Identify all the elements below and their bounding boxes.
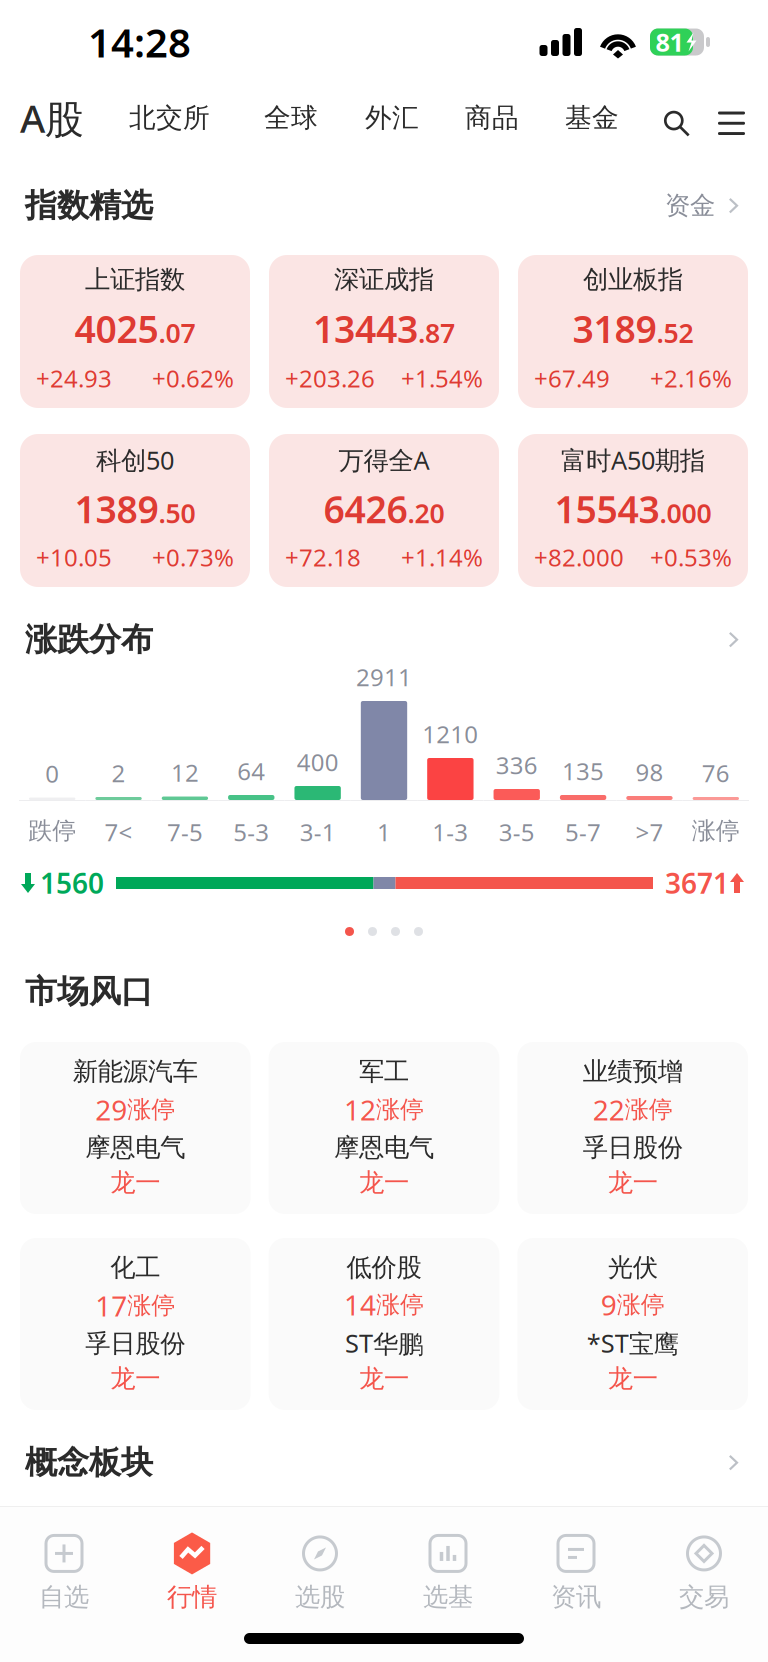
staticText: 选基 — [423, 1581, 473, 1612]
staticText: 资讯 — [551, 1581, 601, 1612]
staticText: 涨停 — [376, 1095, 424, 1124]
staticText: 涨停 — [625, 1095, 673, 1124]
staticText: 98 — [635, 756, 663, 788]
button[interactable]: 创业板指 — [518, 255, 748, 408]
button[interactable]: 全球 — [264, 101, 318, 134]
staticText: 龙一 — [359, 1363, 409, 1394]
staticText: +67.49 — [534, 362, 610, 394]
button[interactable]: 资金 — [665, 190, 743, 221]
staticText: 17 — [95, 1287, 127, 1324]
staticText: +1.14% — [401, 541, 483, 573]
staticText: 全球 — [264, 101, 318, 134]
staticText: 13443 — [313, 304, 418, 353]
staticText: >7 — [635, 816, 663, 848]
button[interactable]: 商品 — [465, 101, 519, 134]
button[interactable]: 自选 — [0, 1532, 128, 1612]
staticText: 涨停 — [376, 1290, 424, 1319]
button[interactable]: 选股 — [256, 1532, 384, 1612]
staticText: 涨停 — [127, 1291, 175, 1320]
staticText: 7-5 — [167, 816, 203, 848]
button[interactable]: 更多 — [723, 1453, 743, 1473]
button[interactable]: 低价股 — [269, 1238, 499, 1410]
staticText: A股 — [20, 92, 84, 143]
staticText: 龙一 — [608, 1167, 658, 1198]
button[interactable]: 新能源汽车 — [20, 1042, 251, 1214]
button[interactable]: 行情 — [128, 1532, 256, 1612]
staticText: 135 — [562, 755, 604, 787]
staticText: 涨停 — [127, 1095, 175, 1124]
staticText: 资金 — [665, 190, 715, 221]
staticText: 涨停 — [692, 816, 740, 845]
staticText: 3189 — [572, 304, 656, 353]
staticText: 12 — [344, 1091, 376, 1128]
staticText: 孚日股份 — [583, 1132, 683, 1163]
button[interactable]: 业绩预增 — [517, 1042, 748, 1214]
staticText: 1-3 — [432, 816, 468, 848]
staticText: +203.26 — [285, 362, 375, 394]
button[interactable]: 上证指数 — [20, 255, 250, 408]
staticText: +72.18 — [285, 541, 361, 573]
staticText: 龙一 — [110, 1363, 160, 1394]
staticText: 摩恩电气 — [85, 1132, 185, 1163]
staticText: 概念板块 — [25, 1443, 153, 1482]
staticText: .000 — [659, 495, 711, 531]
staticText: 摩恩电气 — [334, 1132, 434, 1163]
staticText: 14:28 — [88, 15, 191, 68]
staticText: 上证指数 — [85, 264, 185, 295]
staticText: 9 — [601, 1286, 617, 1323]
staticText: 1389 — [74, 484, 158, 534]
staticText: 5-3 — [233, 816, 269, 848]
staticText: 北交所 — [129, 101, 210, 134]
button[interactable]: 北交所 — [129, 101, 210, 134]
staticText: +0.62% — [152, 362, 234, 394]
staticText: 2 — [111, 757, 125, 789]
staticText: 涨跌分布 — [25, 620, 153, 659]
staticText: .87 — [418, 315, 455, 350]
staticText: +0.73% — [152, 541, 234, 573]
staticText: 军工 — [359, 1056, 409, 1087]
staticText: 4025 — [74, 304, 158, 353]
staticText: 光伏 — [608, 1252, 658, 1283]
button[interactable]: A股 — [20, 92, 84, 143]
staticText: 低价股 — [346, 1252, 421, 1283]
staticText: 富时A50期指 — [561, 443, 705, 477]
staticText: 14 — [344, 1286, 376, 1323]
button[interactable]: 光伏 — [517, 1238, 748, 1410]
button[interactable]: 选基 — [384, 1532, 512, 1612]
button[interactable]: 更多 — [723, 630, 743, 650]
button[interactable]: 交易 — [640, 1532, 768, 1612]
staticText: 64 — [237, 755, 265, 787]
button[interactable]: 深证成指 — [269, 255, 499, 408]
staticText: 外汇 — [365, 101, 419, 134]
button[interactable]: 菜单 — [718, 99, 745, 137]
staticText: 创业板指 — [583, 264, 683, 295]
staticText: 化工 — [110, 1252, 160, 1283]
staticText: 1560 — [40, 864, 104, 902]
staticText: 龙一 — [608, 1363, 658, 1394]
staticText: 科创50 — [96, 443, 174, 477]
staticText: 0 — [45, 758, 59, 789]
staticText: 万得全A — [338, 443, 429, 477]
staticText: 基金 — [565, 101, 619, 134]
button[interactable]: 科创50 — [20, 434, 250, 587]
button[interactable]: 化工 — [20, 1238, 251, 1410]
button[interactable]: 搜索 — [663, 99, 690, 137]
button[interactable]: 富时A50期指 — [518, 434, 748, 587]
button[interactable]: 万得全A — [269, 434, 499, 587]
staticText: *ST宝鹰 — [587, 1326, 679, 1360]
staticText: 交易 — [679, 1581, 729, 1612]
staticText: 深证成指 — [334, 264, 434, 295]
staticText: 12 — [171, 757, 199, 788]
staticText: .50 — [158, 495, 195, 531]
staticText: +82.000 — [534, 541, 624, 573]
staticText: +10.05 — [36, 541, 112, 573]
staticText: +2.16% — [650, 362, 732, 394]
staticText: 行情 — [167, 1581, 217, 1612]
button[interactable]: 基金 — [565, 101, 619, 134]
staticText: 76 — [702, 757, 730, 789]
button[interactable]: 资讯 — [512, 1532, 640, 1612]
staticText: 6426 — [323, 484, 407, 534]
button[interactable]: 军工 — [269, 1042, 499, 1214]
button[interactable]: 外汇 — [365, 101, 419, 134]
staticText: .20 — [407, 495, 444, 531]
